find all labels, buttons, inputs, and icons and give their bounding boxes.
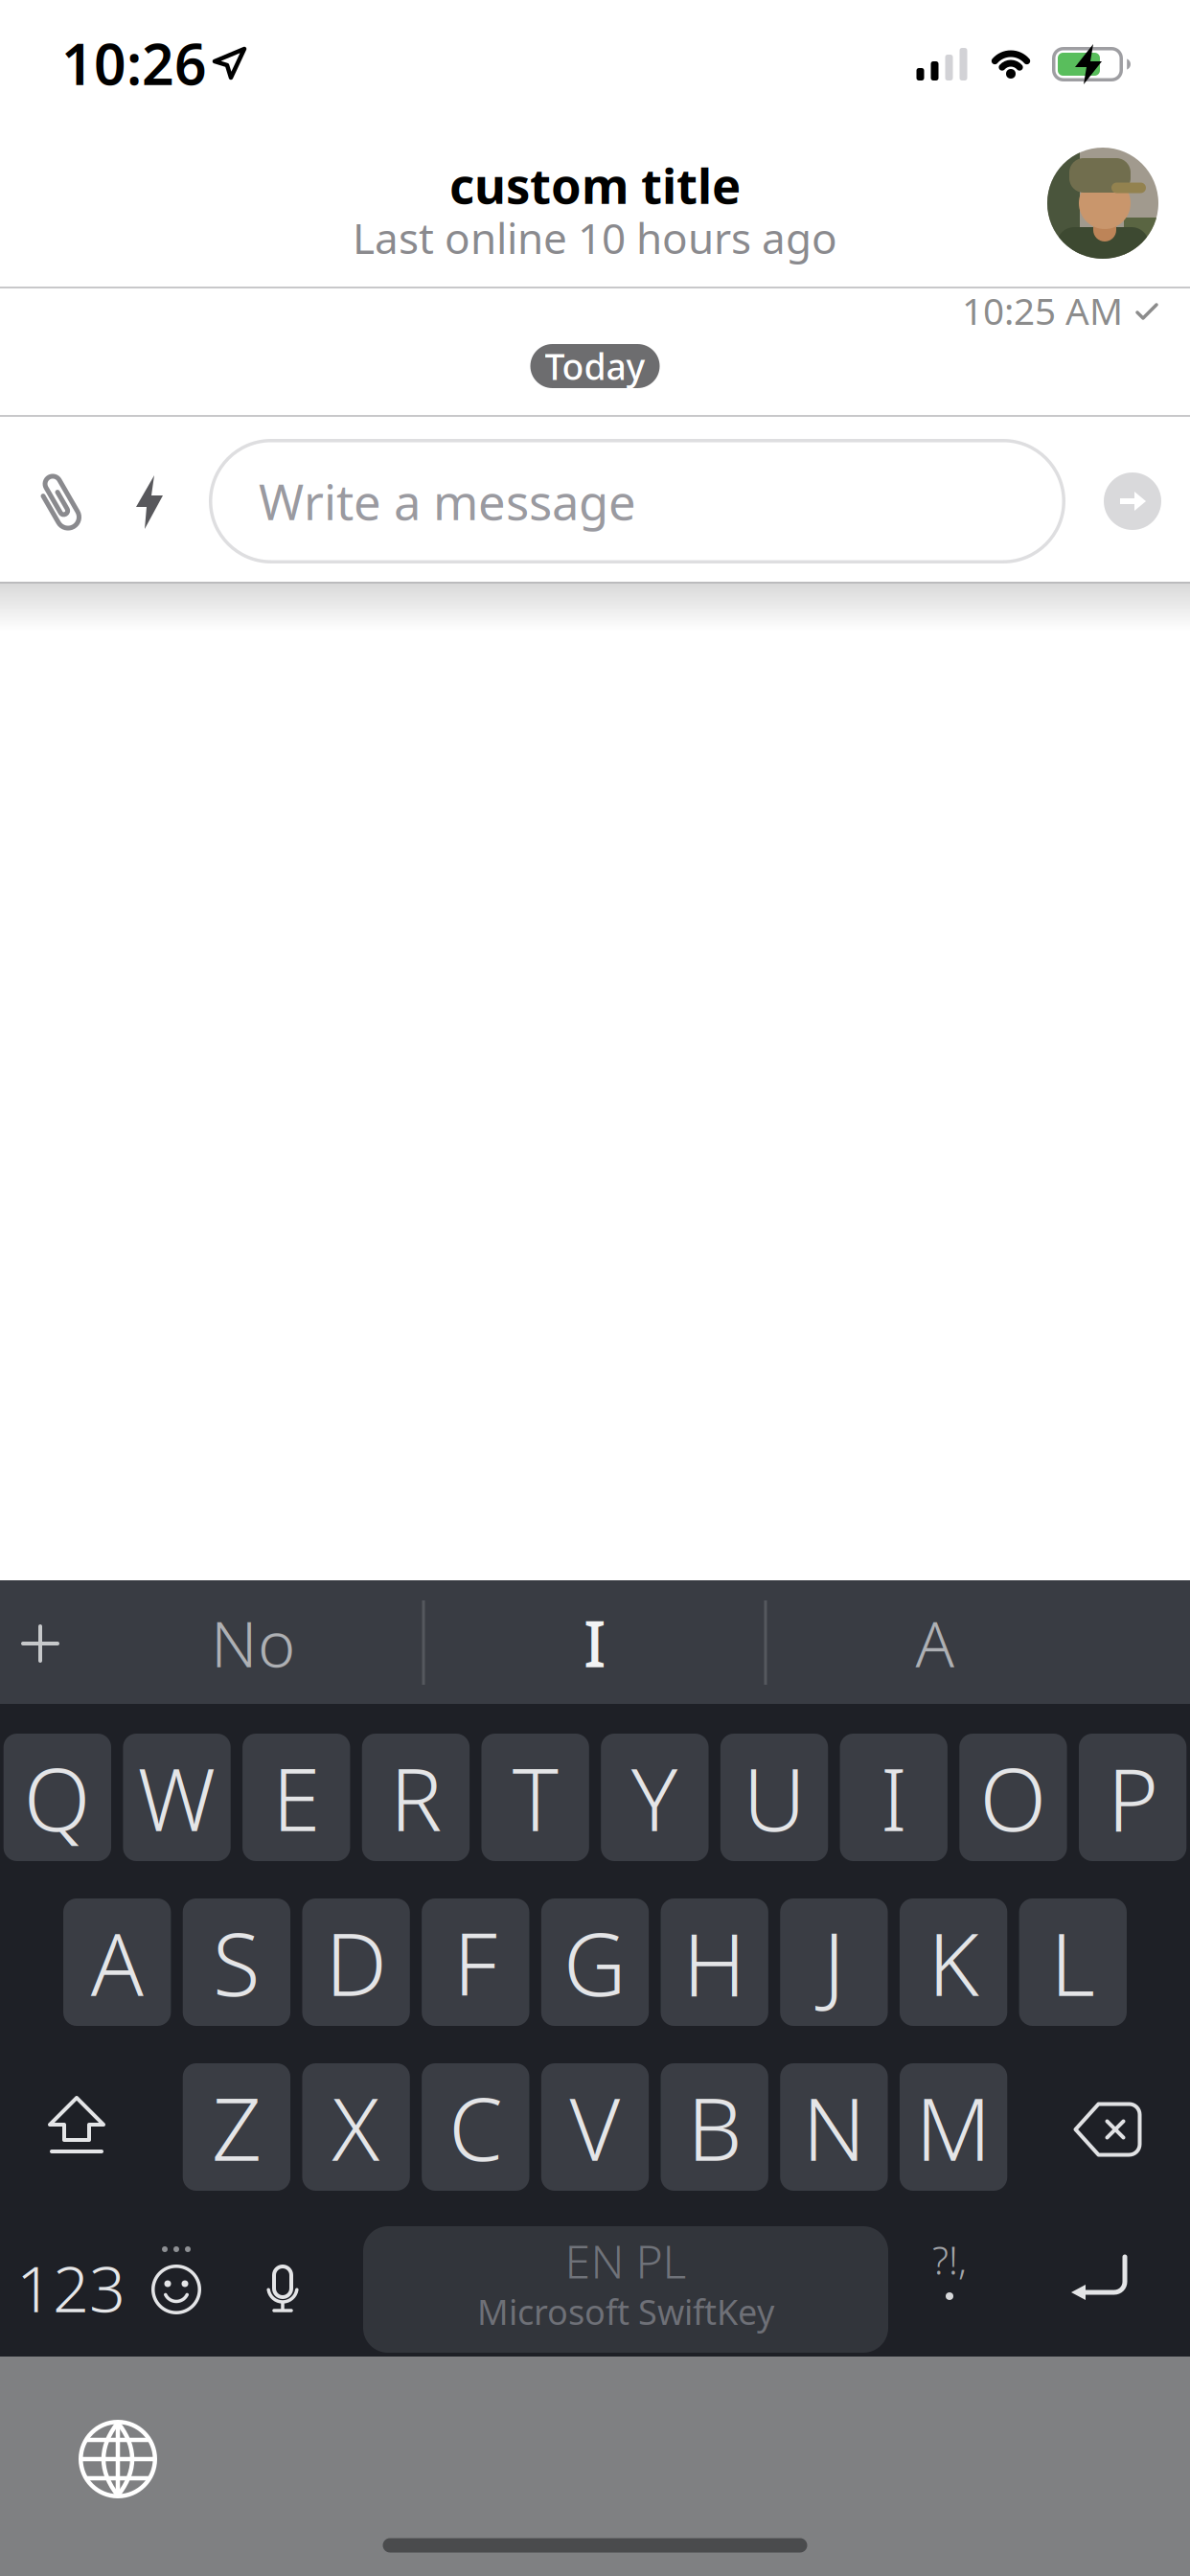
staticText: M bbox=[916, 2069, 991, 2185]
button[interactable]: T bbox=[481, 1734, 589, 1861]
button[interactable]: R bbox=[362, 1734, 470, 1861]
button[interactable]: H bbox=[661, 1898, 768, 2026]
button[interactable]: No bbox=[100, 1581, 406, 1704]
button[interactable]: Today bbox=[530, 344, 660, 388]
button[interactable] bbox=[23, 1626, 57, 1661]
staticText: 10:25 AM bbox=[962, 286, 1123, 335]
button[interactable]: EN PL bbox=[363, 2226, 888, 2353]
button[interactable]: G bbox=[541, 1898, 649, 2026]
button[interactable]: J bbox=[780, 1898, 888, 2026]
staticText: T bbox=[512, 1740, 558, 1855]
staticText: R bbox=[390, 1740, 442, 1855]
button[interactable]: X bbox=[302, 2063, 410, 2191]
button[interactable]: Y bbox=[601, 1734, 709, 1861]
button[interactable] bbox=[50, 2098, 103, 2153]
staticText: X bbox=[332, 2069, 380, 2185]
staticText: N bbox=[802, 2069, 866, 2185]
staticText: I bbox=[584, 1600, 606, 1685]
staticText: D bbox=[325, 1904, 387, 2020]
button[interactable]: V bbox=[541, 2063, 649, 2191]
staticText: 10:26 bbox=[61, 26, 207, 101]
staticText: W bbox=[138, 1740, 216, 1855]
button[interactable] bbox=[266, 2265, 299, 2312]
button[interactable]: M bbox=[900, 2063, 1007, 2191]
staticText: A bbox=[915, 1600, 955, 1685]
staticText: C bbox=[449, 2069, 502, 2185]
button[interactable]: ?!, bbox=[930, 2250, 969, 2306]
staticText: U bbox=[743, 1740, 805, 1855]
staticText: 123 bbox=[16, 2245, 126, 2330]
button[interactable]: I bbox=[840, 1734, 947, 1861]
button[interactable]: O bbox=[959, 1734, 1067, 1861]
staticText: L bbox=[1050, 1904, 1095, 2020]
button[interactable]: 123 bbox=[16, 2245, 126, 2330]
button[interactable]: S bbox=[183, 1898, 290, 2026]
staticText: No bbox=[211, 1600, 295, 1685]
button[interactable]: W bbox=[123, 1734, 231, 1861]
staticText: B bbox=[687, 2069, 742, 2185]
button[interactable] bbox=[1076, 2104, 1140, 2155]
button[interactable]: Z bbox=[183, 2063, 290, 2191]
staticText: Today bbox=[545, 342, 645, 390]
button[interactable] bbox=[30, 468, 89, 537]
staticText: custom title bbox=[449, 153, 741, 217]
staticText: V bbox=[570, 2069, 620, 2185]
staticText: E bbox=[272, 1740, 320, 1855]
staticText: EN PL bbox=[565, 2230, 687, 2291]
staticText: P bbox=[1107, 1740, 1158, 1855]
button[interactable]: B bbox=[661, 2063, 768, 2191]
button[interactable]: Q bbox=[4, 1734, 111, 1861]
button[interactable] bbox=[136, 475, 163, 529]
button[interactable]: A bbox=[63, 1898, 171, 2026]
staticText: J bbox=[823, 1904, 845, 2020]
staticText: F bbox=[453, 1904, 498, 2020]
button[interactable]: Write a message bbox=[209, 439, 1065, 563]
staticText: Last online 10 hours ago bbox=[353, 210, 837, 266]
button[interactable]: C bbox=[422, 2063, 529, 2191]
button[interactable]: L bbox=[1019, 1898, 1127, 2026]
staticText: H bbox=[683, 1904, 746, 2020]
staticText: Write a message bbox=[259, 469, 636, 534]
staticText: S bbox=[213, 1904, 261, 2020]
button[interactable]: I bbox=[442, 1581, 748, 1704]
staticText: Z bbox=[212, 2069, 261, 2185]
button[interactable]: K bbox=[900, 1898, 1007, 2026]
button[interactable]: A bbox=[782, 1581, 1088, 1704]
staticText: Y bbox=[631, 1740, 678, 1855]
staticText: O bbox=[980, 1740, 1047, 1855]
button[interactable] bbox=[1071, 2257, 1129, 2305]
button[interactable]: N bbox=[780, 2063, 888, 2191]
staticText: Microsoft SwiftKey bbox=[477, 2289, 774, 2334]
staticText: Q bbox=[24, 1740, 91, 1855]
staticText: K bbox=[928, 1904, 979, 2020]
button[interactable]: P bbox=[1079, 1734, 1186, 1861]
staticText: I bbox=[880, 1740, 907, 1855]
staticText: ?!, bbox=[932, 2234, 967, 2285]
button[interactable] bbox=[1104, 472, 1161, 530]
button[interactable]: E bbox=[243, 1734, 350, 1861]
button[interactable] bbox=[79, 2420, 157, 2498]
button[interactable]: F bbox=[422, 1898, 529, 2026]
button[interactable]: U bbox=[720, 1734, 828, 1861]
button[interactable]: D bbox=[302, 1898, 410, 2026]
staticText: G bbox=[563, 1904, 627, 2020]
button[interactable] bbox=[149, 2245, 203, 2316]
staticText: A bbox=[91, 1904, 143, 2020]
button[interactable] bbox=[1047, 148, 1158, 259]
